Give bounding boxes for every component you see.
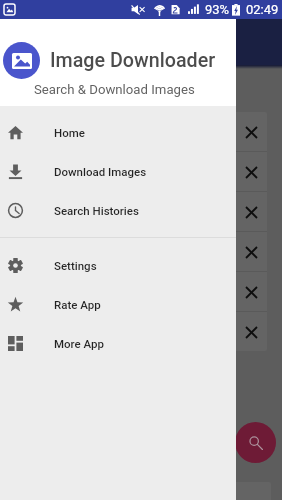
staticText: mountain view <box>18 325 236 339</box>
staticText: 93% <box>205 2 230 17</box>
button[interactable]: More App <box>0 324 236 363</box>
staticText: Image Downloader <box>50 49 216 72</box>
staticText: flower wallpapers <box>18 125 236 139</box>
button[interactable]: Remove <box>236 317 266 347</box>
button[interactable]: flower wallpapers <box>6 112 267 151</box>
button[interactable]: Search Histories <box>0 191 236 230</box>
button[interactable]: Remove <box>236 117 266 147</box>
button[interactable]: Remove <box>236 157 266 187</box>
button[interactable]: Open navigation drawer <box>11 29 37 55</box>
staticText: Rate App <box>54 298 101 311</box>
staticText: Search Histories <box>54 204 139 217</box>
staticText: sports car <box>18 205 236 219</box>
button[interactable]: Remove <box>236 197 266 227</box>
button[interactable]: Home <box>0 113 236 152</box>
staticText: Home <box>54 126 85 139</box>
button[interactable]: Settings <box>0 246 236 285</box>
button[interactable]: Download Images <box>0 152 236 191</box>
button[interactable]: Rate App <box>0 285 236 324</box>
button[interactable]: cute cats <box>6 272 267 311</box>
button[interactable]: mountain view <box>6 312 267 351</box>
button[interactable]: sports car <box>6 192 267 231</box>
button[interactable]: Search <box>235 422 276 463</box>
staticText: Settings <box>54 259 97 272</box>
button[interactable]: Remove <box>236 237 266 267</box>
staticText: 02:49 <box>246 2 279 17</box>
staticText: nature hd <box>18 165 236 179</box>
staticText: More App <box>54 337 104 350</box>
button[interactable]: Remove <box>236 277 266 307</box>
button[interactable]: beach sunset <box>6 232 267 271</box>
staticText: Download Images <box>54 165 147 178</box>
staticText: Search & Download Images <box>34 82 195 97</box>
button[interactable]: nature hd <box>6 152 267 191</box>
